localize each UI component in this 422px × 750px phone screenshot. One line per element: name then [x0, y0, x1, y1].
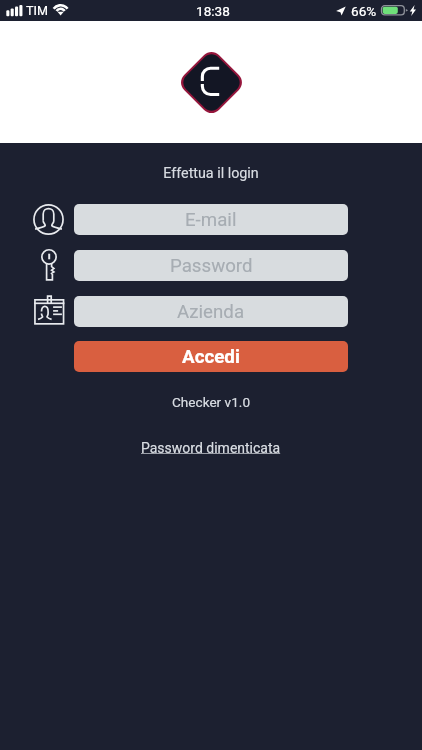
- staticText: Effettua il login: [0, 165, 422, 182]
- button[interactable]: Password dimenticata: [141, 440, 281, 456]
- staticText: Azienda: [177, 301, 245, 323]
- staticText: Password: [170, 255, 253, 277]
- button[interactable]: Password: [74, 250, 348, 281]
- other: Password: [32, 250, 65, 281]
- staticText: 18:38: [196, 3, 230, 19]
- button[interactable]: Azienda: [74, 296, 348, 327]
- other: Account: [32, 204, 65, 235]
- staticText: E-mail: [185, 209, 237, 231]
- other: Company: [32, 296, 65, 327]
- button[interactable]: Accedi: [74, 341, 348, 372]
- staticText: Checker v1.0: [0, 394, 422, 410]
- button[interactable]: E-mail: [74, 204, 348, 235]
- staticText: Accedi: [182, 346, 240, 368]
- staticText: TIM: [26, 3, 48, 18]
- staticText: 66%: [351, 3, 377, 19]
